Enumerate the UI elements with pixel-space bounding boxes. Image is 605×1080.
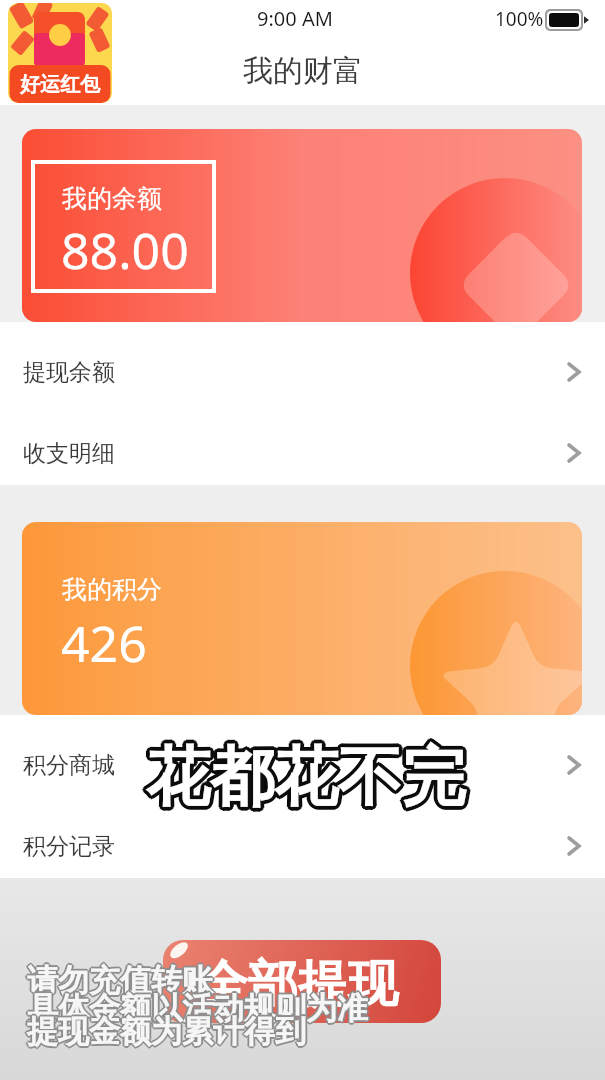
staticText: 花都花不完	[147, 740, 467, 821]
staticText: 花都花不完	[149, 738, 469, 819]
staticText: 花都花不完	[147, 738, 467, 819]
staticText: 花都花不完	[146, 739, 466, 820]
staticText: 具体金额以活动规则为准	[27, 991, 368, 1030]
staticText: 花都花不完	[149, 735, 469, 816]
staticText: 花都花不完	[145, 735, 465, 816]
staticText: 我的余额	[62, 183, 162, 214]
staticText: 花都花不完	[145, 738, 465, 819]
staticText: 花都花不完	[144, 738, 464, 819]
staticText: 花都花不完	[145, 739, 465, 820]
staticText: 提现余额	[23, 358, 115, 387]
staticText: 具体金额以活动规则为准	[27, 988, 368, 1027]
staticText: 提现金额为累计得到	[26, 1012, 305, 1051]
staticText: 花都花不完	[143, 735, 463, 816]
button[interactable]: 好运红包 app icon	[8, 3, 112, 103]
staticText: 花都花不完	[145, 736, 465, 817]
staticText: 请勿充值转账	[28, 962, 214, 1001]
staticText: 具体金额以活动规则为准	[28, 989, 369, 1028]
staticText: 请勿充值转账	[27, 961, 213, 1000]
staticText: 花都花不完	[143, 738, 463, 819]
staticText: 花都花不完	[144, 739, 464, 820]
staticText: 花都花不完	[146, 737, 466, 818]
staticText: 花都花不完	[148, 736, 468, 817]
staticText: 请勿充值转账	[27, 960, 213, 999]
staticText: 花都花不完	[145, 740, 465, 821]
staticText: 426	[61, 609, 147, 677]
staticText: 提现金额为累计得到	[26, 1013, 305, 1052]
staticText: 提现金额为累计得到	[27, 1012, 306, 1051]
staticText: 提现金额为累计得到	[25, 1012, 304, 1051]
staticText: 花都花不完	[143, 736, 463, 817]
staticText: 具体金额以活动规则为准	[29, 989, 370, 1028]
staticText: 具体金额以活动规则为准	[25, 989, 366, 1028]
staticText: 花都花不完	[146, 741, 466, 822]
staticText: 花都花不完	[146, 733, 466, 814]
staticText: 好运红包	[20, 72, 100, 97]
staticText: 花都花不完	[148, 739, 468, 820]
staticText: 具体金额以活动规则为准	[26, 990, 367, 1029]
staticText: 具体金额以活动规则为准	[27, 990, 368, 1029]
staticText: 花都花不完	[146, 735, 466, 816]
staticText: 请勿充值转账	[26, 960, 212, 999]
staticText: 花都花不完	[148, 740, 468, 821]
staticText: 花都花不完	[147, 737, 467, 818]
staticText: 花都花不完	[146, 738, 466, 819]
staticText: 花都花不完	[147, 739, 467, 820]
staticText: 花都花不完	[146, 736, 466, 817]
staticText: 提现金额为累计得到	[26, 1011, 305, 1050]
staticText: 花都花不完	[148, 738, 468, 819]
button[interactable]: 积分记录	[0, 796, 605, 877]
staticText: 提现金额为累计得到	[29, 1012, 308, 1051]
staticText: 100%	[495, 6, 544, 32]
staticText: 我的积分	[62, 574, 162, 605]
staticText: 请勿充值转账	[27, 962, 213, 1001]
staticText: 花都花不完	[148, 734, 468, 815]
staticText: 花都花不完	[147, 735, 467, 816]
staticText: 收支明细	[23, 439, 115, 468]
staticText: 具体金额以活动规则为准	[26, 989, 367, 1028]
staticText: 花都花不完	[144, 734, 464, 815]
button[interactable]: 收支明细	[0, 403, 605, 484]
button[interactable]: 全部提现	[163, 940, 441, 1023]
staticText: 花都花不完	[146, 734, 466, 815]
staticText: 提现金额为累计得到	[27, 1013, 306, 1052]
staticText: 88.00	[61, 216, 189, 284]
staticText: 具体金额以活动规则为准	[28, 990, 369, 1029]
staticText: 提现金额为累计得到	[27, 1011, 306, 1050]
staticText: 全部提现	[198, 953, 398, 1016]
staticText: 请勿充值转账	[26, 962, 212, 1001]
staticText: 花都花不完	[147, 736, 467, 817]
staticText: 请勿充值转账	[27, 963, 213, 1002]
staticText: 具体金额以活动规则为准	[27, 987, 368, 1026]
staticText: 请勿充值转账	[27, 959, 213, 998]
staticText: 花都花不完	[145, 734, 465, 815]
staticText: 花都花不完	[144, 735, 464, 816]
staticText: 提现金额为累计得到	[28, 1011, 307, 1050]
staticText: 积分记录	[23, 832, 115, 861]
staticText: 具体金额以活动规则为准	[28, 988, 369, 1027]
staticText: 花都花不完	[150, 737, 470, 818]
staticText: 提现金额为累计得到	[27, 1010, 306, 1049]
staticText: 花都花不完	[144, 736, 464, 817]
staticText: 请勿充值转账	[25, 961, 211, 1000]
staticText: 具体金额以活动规则为准	[27, 989, 368, 1028]
staticText: 花都花不完	[146, 740, 466, 821]
staticText: 花都花不完	[149, 739, 469, 820]
staticText: 提现金额为累计得到	[27, 1014, 306, 1053]
staticText: 花都花不完	[147, 734, 467, 815]
staticText: 花都花不完	[143, 737, 463, 818]
staticText: 花都花不完	[149, 737, 469, 818]
staticText: 花都花不完	[145, 737, 465, 818]
staticText: 花都花不完	[144, 737, 464, 818]
staticText: 花都花不完	[143, 739, 463, 820]
staticText: 提现金额为累计得到	[28, 1013, 307, 1052]
staticText: 花都花不完	[142, 737, 462, 818]
button[interactable]: 积分商城	[0, 715, 605, 796]
button[interactable]: 提现余额	[0, 322, 605, 403]
staticText: 具体金额以活动规则为准	[26, 988, 367, 1027]
staticText: 请勿充值转账	[26, 961, 212, 1000]
staticText: 我的财富	[243, 52, 363, 90]
staticText: 积分商城	[23, 751, 115, 780]
staticText: 花都花不完	[148, 735, 468, 816]
staticText: 花都花不完	[148, 737, 468, 818]
